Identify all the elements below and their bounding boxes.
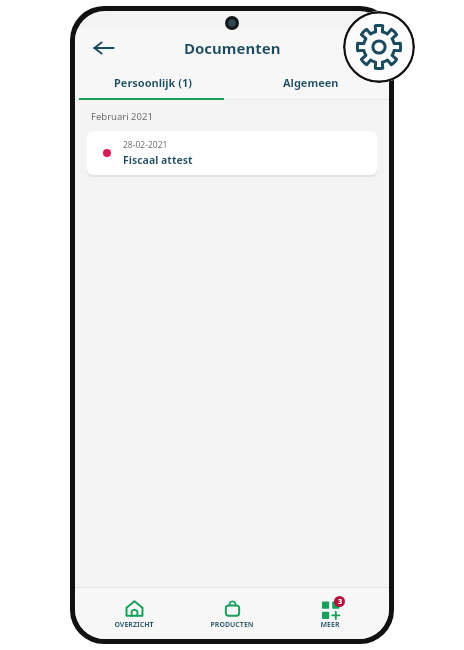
button[interactable]: 28-02-2021 [87,131,377,175]
button[interactable]: Back [89,33,119,63]
staticText: Persoonlijk (1) [114,75,193,90]
staticText: 28-02-2021 [123,139,168,151]
button[interactable]: 3 [291,597,369,630]
button[interactable]: OVERZICHT [95,597,173,630]
staticText: Documenten [184,38,281,58]
staticText: Februari 2021 [91,110,153,123]
button[interactable]: Settings [343,11,415,83]
staticText: 3 [338,597,342,606]
staticText: PRODUCTEN [210,620,254,630]
button[interactable]: PRODUCTEN [193,597,271,630]
staticText: MEER [320,620,340,630]
staticText: Fiscaal attest [123,153,193,167]
staticText: OVERZICHT [114,620,154,630]
button[interactable]: Algemeen [232,67,389,97]
button[interactable]: Persoonlijk (1) [75,67,232,97]
staticText: Algemeen [283,75,339,90]
